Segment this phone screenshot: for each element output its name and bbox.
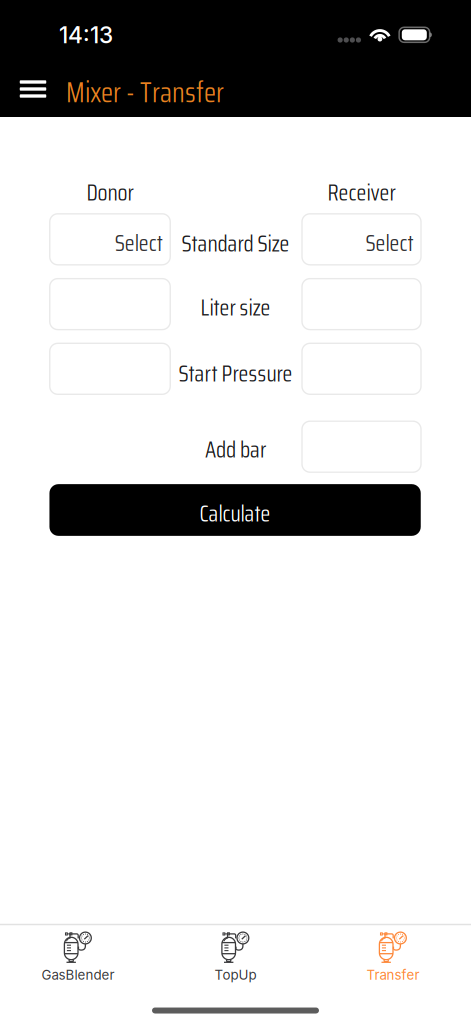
staticText: Calculate <box>199 496 270 531</box>
staticText: Standard Size <box>181 226 289 261</box>
staticText: Mixer - Transfer <box>66 70 224 115</box>
button[interactable]: Input field <box>302 279 421 330</box>
button[interactable]: Input field <box>302 343 421 394</box>
button[interactable]: GasBlender <box>0 929 156 995</box>
staticText: GasBlender <box>41 967 114 983</box>
button[interactable]: Menu <box>7 65 59 113</box>
staticText: Add bar <box>205 432 266 467</box>
staticText: Receiver <box>327 175 395 210</box>
staticText: Select <box>115 225 163 261</box>
staticText: Start Pressure <box>178 356 292 391</box>
staticText: Liter size <box>200 290 270 325</box>
staticText: Transfer <box>366 967 419 983</box>
button[interactable]: Input field <box>50 343 170 394</box>
staticText: Donor <box>86 175 133 210</box>
button[interactable]: Transfer <box>315 929 471 995</box>
button[interactable]: Calculate <box>49 484 421 536</box>
button[interactable]: TopUp <box>157 929 313 995</box>
staticText: TopUp <box>214 967 256 983</box>
button[interactable]: Select <box>302 214 421 265</box>
staticText: 14:13 <box>59 21 113 49</box>
staticText: Select <box>365 225 413 261</box>
button[interactable]: Input field <box>50 279 170 330</box>
button[interactable]: Input field <box>302 421 421 472</box>
button[interactable]: Select <box>50 214 170 265</box>
